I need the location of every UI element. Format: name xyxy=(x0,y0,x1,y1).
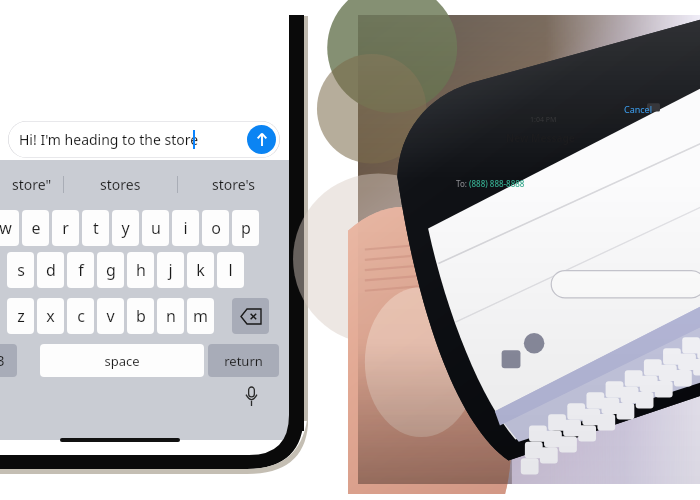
button[interactable]: Delete xyxy=(232,298,269,334)
staticText: s xyxy=(17,259,25,281)
staticText: p xyxy=(241,217,251,239)
staticText: h xyxy=(136,259,146,281)
button[interactable]: l xyxy=(217,252,244,288)
staticText: x xyxy=(46,305,55,327)
button[interactable]: e xyxy=(22,210,49,246)
button[interactable]: v xyxy=(97,298,124,334)
staticText: j xyxy=(168,259,173,281)
button[interactable]: store" xyxy=(0,160,63,209)
staticText: e xyxy=(31,217,41,239)
button[interactable]: Dictate xyxy=(238,382,264,410)
button[interactable]: return xyxy=(208,344,279,377)
button[interactable]: u xyxy=(142,210,169,246)
staticText: d xyxy=(46,259,56,281)
staticText: store" xyxy=(12,175,52,194)
staticText: y xyxy=(121,217,130,239)
button[interactable]: s xyxy=(7,252,34,288)
staticText: To: xyxy=(456,178,469,189)
button[interactable]: p xyxy=(232,210,259,246)
button[interactable]: n xyxy=(157,298,184,334)
button[interactable]: z xyxy=(7,298,34,334)
button[interactable]: w xyxy=(0,210,19,246)
staticText: f xyxy=(78,259,84,281)
staticText: stores xyxy=(100,175,141,194)
staticText: z xyxy=(17,305,25,327)
staticText: b xyxy=(136,305,146,327)
staticText: l xyxy=(228,259,233,281)
staticText: u xyxy=(151,217,161,239)
staticText: space xyxy=(104,352,140,370)
staticText: t xyxy=(93,217,99,239)
staticText: k xyxy=(196,259,205,281)
staticText: (888) 888-8888 xyxy=(469,178,525,189)
button[interactable]: x xyxy=(37,298,64,334)
staticText: m xyxy=(193,305,208,327)
button[interactable]: k xyxy=(187,252,214,288)
button[interactable]: j xyxy=(157,252,184,288)
button[interactable]: 1:04 PM xyxy=(530,115,557,125)
button[interactable]: m xyxy=(187,298,214,334)
staticText: 1:04 PM xyxy=(530,115,557,125)
button[interactable]: d xyxy=(37,252,64,288)
button[interactable]: r xyxy=(52,210,79,246)
staticText: g xyxy=(106,259,116,281)
button[interactable]: f xyxy=(67,252,94,288)
button[interactable]: store's xyxy=(178,160,289,209)
button[interactable]: store" xyxy=(0,160,289,209)
button[interactable]: t xyxy=(82,210,109,246)
button[interactable]: b xyxy=(127,298,154,334)
button[interactable]: o xyxy=(202,210,229,246)
staticText: Cancel xyxy=(624,103,653,115)
staticText: w xyxy=(0,217,12,239)
staticText: 3 xyxy=(0,351,5,370)
staticText: r xyxy=(62,217,69,239)
button[interactable]: c xyxy=(67,298,94,334)
button[interactable]: space xyxy=(40,344,204,377)
staticText: return xyxy=(224,352,263,370)
staticText: n xyxy=(166,305,176,327)
button[interactable]: i xyxy=(172,210,199,246)
button[interactable]: stores xyxy=(64,160,177,209)
button[interactable]: h xyxy=(127,252,154,288)
button[interactable]: 3 xyxy=(0,344,17,377)
button[interactable]: Cancel xyxy=(624,103,653,115)
staticText: Hi! I'm heading to the store xyxy=(19,130,199,149)
staticText: i xyxy=(183,217,188,239)
button[interactable]: Send xyxy=(247,125,276,154)
button[interactable]: Hi! I'm heading to the store xyxy=(8,121,280,158)
staticText: v xyxy=(106,305,115,327)
button[interactable]: y xyxy=(112,210,139,246)
staticText: store's xyxy=(212,175,255,194)
staticText: c xyxy=(77,305,85,327)
staticText: o xyxy=(211,217,221,239)
button[interactable]: g xyxy=(97,252,124,288)
